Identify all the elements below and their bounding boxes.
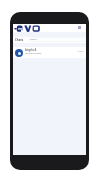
button[interactable]: Search xyxy=(29,37,85,42)
staticText: Chats xyxy=(15,38,24,42)
staticText: Tell me the news xyxy=(25,52,42,55)
staticText: Angela A xyxy=(25,48,37,52)
staticText: Search xyxy=(30,38,37,41)
button[interactable]: Angela A xyxy=(13,47,86,58)
staticText: 12:30 xyxy=(77,50,83,53)
